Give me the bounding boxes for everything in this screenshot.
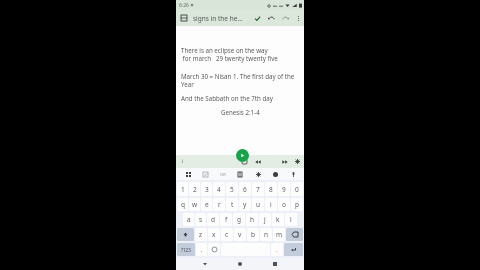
staticText: a <box>187 215 191 224</box>
button[interactable]: q <box>177 198 188 211</box>
button[interactable]: Recent apps <box>269 258 281 270</box>
button[interactable]: 5 <box>226 182 238 196</box>
button[interactable]: d <box>207 213 219 226</box>
staticText: u <box>256 200 261 209</box>
staticText: s <box>199 215 203 224</box>
staticText: Genesis 2:1-4 <box>221 108 260 116</box>
button[interactable]: Key <box>177 228 194 241</box>
staticText: 1 <box>181 185 185 194</box>
button[interactable]: Home <box>234 258 246 270</box>
button[interactable]: m <box>273 228 285 241</box>
button[interactable]: w <box>189 198 200 211</box>
button[interactable]: Info <box>176 155 189 168</box>
button[interactable]: u <box>252 198 264 211</box>
button[interactable]: r <box>213 198 225 211</box>
staticText: c <box>225 230 229 239</box>
staticText: signs in the he… <box>193 14 250 23</box>
button[interactable]: Apps <box>182 168 194 180</box>
button[interactable]: a <box>183 213 194 226</box>
button[interactable]: Done <box>250 11 264 25</box>
button[interactable]: 6 <box>239 182 251 196</box>
staticText: i <box>182 158 184 165</box>
button[interactable]: 0 <box>291 182 303 196</box>
button[interactable]: s <box>195 213 206 226</box>
button[interactable]: i <box>265 198 277 211</box>
staticText: for march 29 twenty twenty five <box>181 54 278 62</box>
button[interactable]: b <box>247 228 259 241</box>
button[interactable]: z <box>195 228 207 241</box>
button[interactable]: Fast forward <box>278 155 291 168</box>
button[interactable]: . <box>271 243 283 256</box>
button[interactable]: Menu <box>176 10 192 26</box>
button[interactable]: Rewind <box>251 155 264 168</box>
staticText: o <box>282 200 286 209</box>
button[interactable]: 9 <box>278 182 290 196</box>
staticText: i <box>270 200 272 209</box>
staticText: March 30 = Nisan 1. The first day of the <box>181 72 295 80</box>
button[interactable]: Voice input <box>287 168 299 180</box>
staticText: z <box>199 230 203 239</box>
button[interactable]: Key <box>177 243 195 256</box>
button[interactable]: k <box>272 213 284 226</box>
staticText: 5 <box>230 185 234 194</box>
button[interactable]: t <box>226 198 238 211</box>
button[interactable]: Keyboard settings <box>252 168 264 180</box>
button[interactable]: , <box>196 243 207 256</box>
button[interactable]: l <box>285 213 297 226</box>
button[interactable]: Off <box>217 168 229 180</box>
staticText: e <box>205 200 209 209</box>
button[interactable]: Settings <box>291 155 304 168</box>
button[interactable]: e <box>201 198 212 211</box>
button[interactable]: Emoji <box>269 168 281 180</box>
staticText: And the Sabbath on the 7th day <box>181 94 273 102</box>
button[interactable]: x <box>208 228 220 241</box>
button[interactable]: 1 <box>177 182 188 196</box>
button[interactable]: c <box>221 228 233 241</box>
button[interactable]: Repeat <box>238 155 251 168</box>
button[interactable]: Redo <box>278 11 292 25</box>
button[interactable]: 3 <box>201 182 212 196</box>
button[interactable]: j <box>259 213 271 226</box>
staticText: 9 <box>282 185 286 194</box>
staticText: k <box>276 215 280 224</box>
button[interactable]: g <box>233 213 245 226</box>
button[interactable]: Undo <box>264 11 278 25</box>
staticText: x <box>212 230 216 239</box>
button[interactable]: Play <box>236 149 249 162</box>
button[interactable]: v <box>234 228 246 241</box>
button[interactable]: n <box>260 228 272 241</box>
staticText: v <box>238 230 242 239</box>
staticText: j <box>264 215 266 224</box>
staticText: ?123 <box>181 247 191 253</box>
button[interactable]: 2 <box>189 182 200 196</box>
button[interactable]: 7 <box>252 182 264 196</box>
staticText: m <box>276 230 283 239</box>
button[interactable]: Key <box>208 243 220 256</box>
staticText: 7 <box>256 185 260 194</box>
staticText: f <box>225 215 228 224</box>
button[interactable]: Key <box>286 228 303 241</box>
staticText: y <box>243 200 247 209</box>
staticText: r <box>218 200 221 209</box>
staticText: 4 <box>217 185 221 194</box>
button[interactable]: y <box>239 198 251 211</box>
button[interactable]: Clipboard <box>234 168 246 180</box>
staticText: . <box>276 246 278 254</box>
button[interactable]: More options <box>292 12 304 24</box>
button[interactable]: Key <box>284 243 303 256</box>
staticText: 3 <box>205 185 209 194</box>
button[interactable]: 8 <box>265 182 277 196</box>
staticText: l <box>290 215 292 224</box>
button[interactable]: o <box>278 198 290 211</box>
staticText: Year <box>181 80 194 88</box>
button[interactable]: f <box>220 213 232 226</box>
button[interactable]: h <box>246 213 258 226</box>
button[interactable]: Checklist <box>199 168 211 180</box>
staticText: p <box>295 200 299 209</box>
button[interactable]: p <box>291 198 303 211</box>
button[interactable]: Back <box>199 258 211 270</box>
staticText: 0 <box>295 185 299 194</box>
button[interactable]: 4 <box>213 182 225 196</box>
staticText: h <box>250 215 255 224</box>
